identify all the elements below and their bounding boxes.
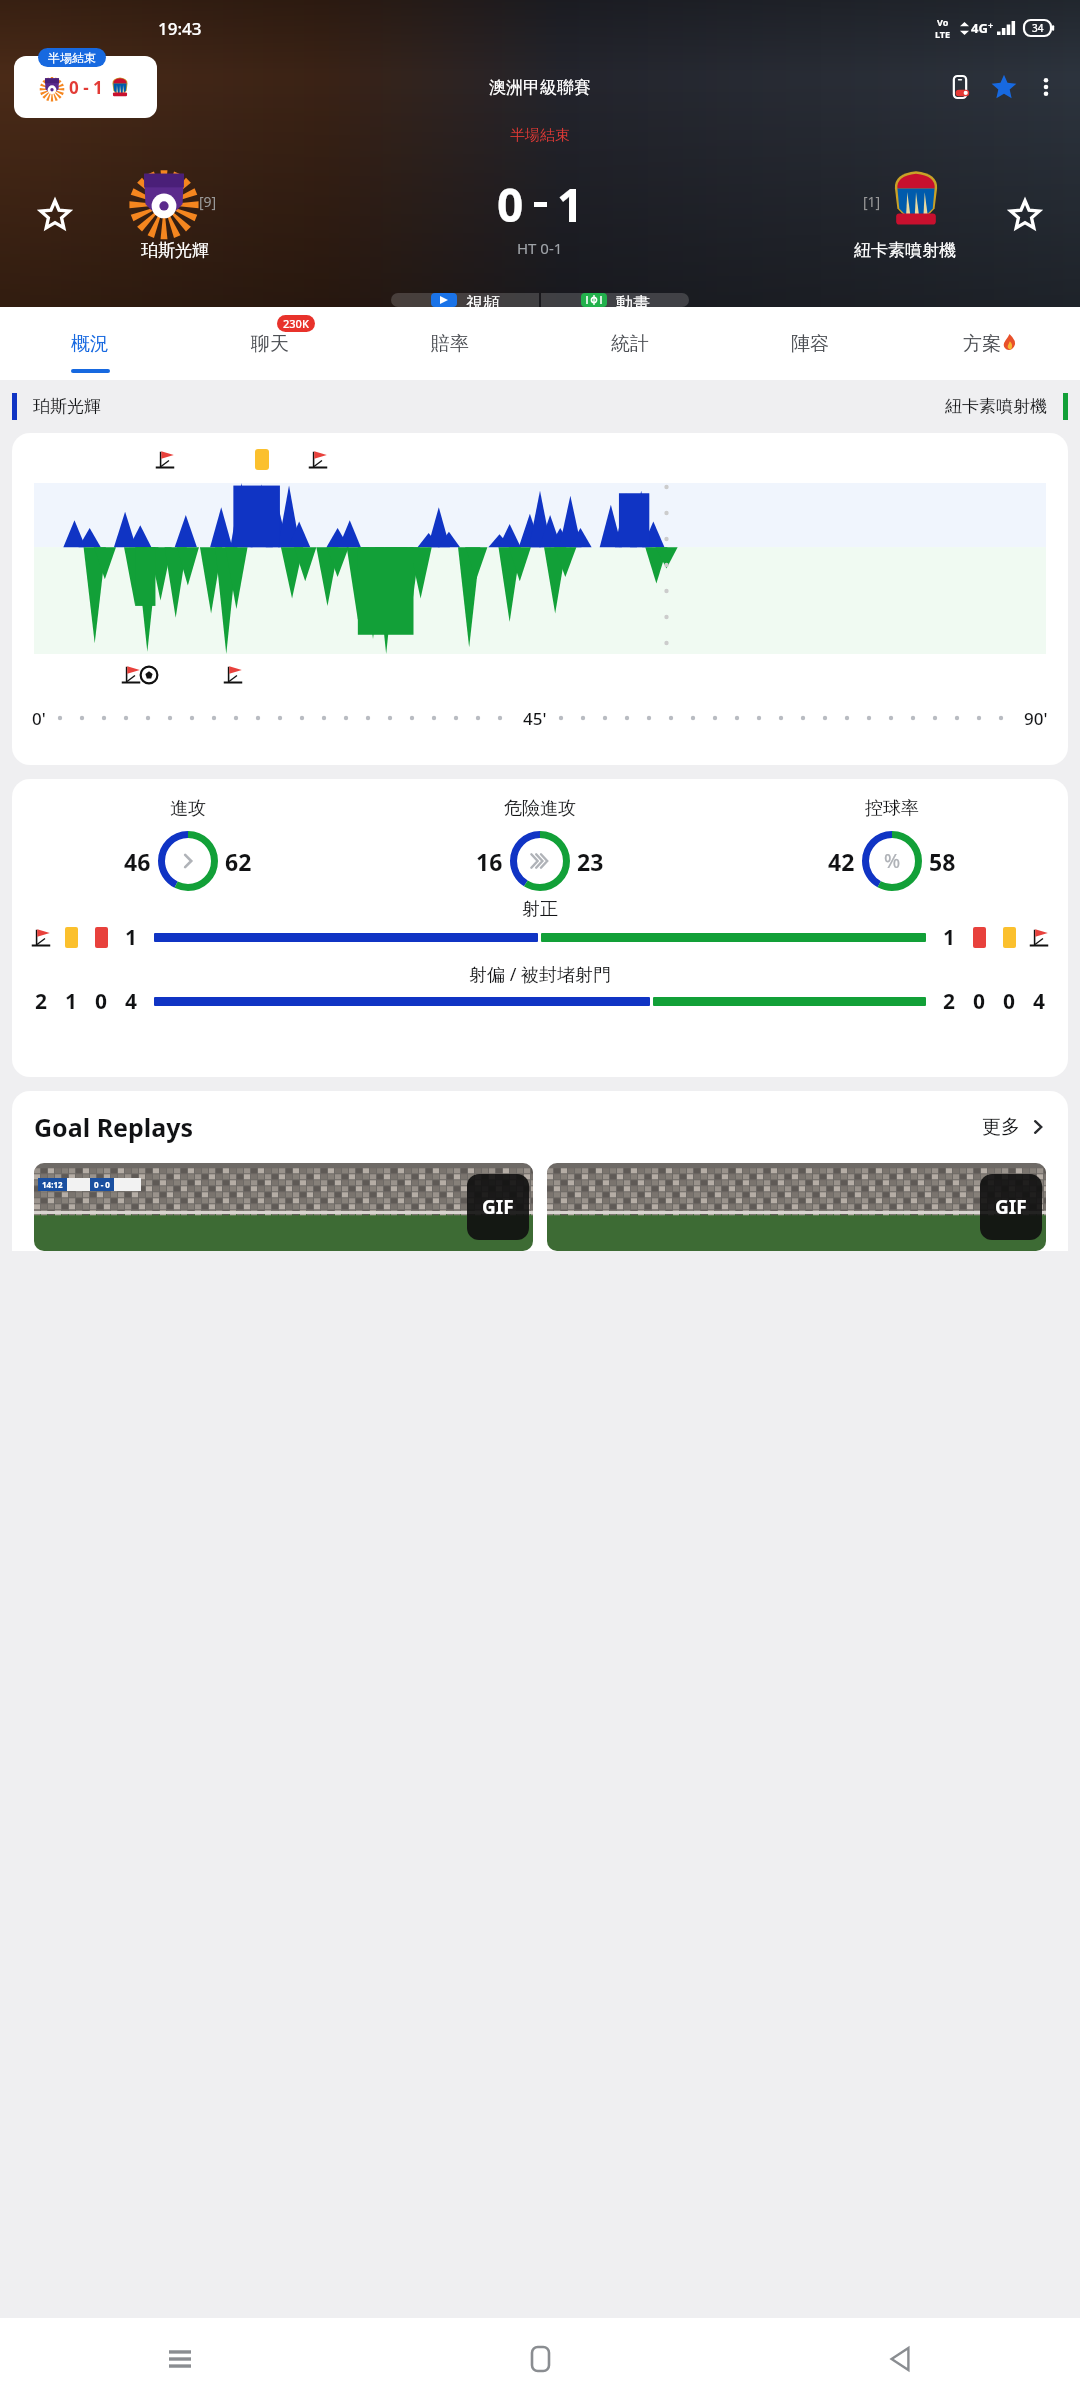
staticText: 230K — [283, 316, 309, 331]
staticText: Vo — [937, 16, 949, 28]
staticText: 統計 — [611, 332, 649, 356]
staticText: 半場結束 — [48, 50, 96, 65]
staticText: 4 — [125, 987, 138, 1016]
staticText: 射偏 / 被封堵射門 — [12, 962, 1068, 987]
staticText: 進攻 — [170, 797, 206, 820]
staticText: 45' — [523, 707, 547, 730]
staticText: 方案 — [963, 332, 1001, 356]
staticText: [1] — [863, 192, 881, 211]
staticText: 射正 — [12, 898, 1068, 921]
staticText: 1 — [65, 987, 78, 1016]
button[interactable]: 賠率 — [360, 307, 540, 380]
staticText: 紐卡素噴射機 — [854, 240, 956, 261]
staticText: 珀斯光輝 — [33, 396, 101, 417]
button[interactable]: More options — [1026, 67, 1066, 107]
staticText: 視頻 — [466, 293, 500, 307]
button[interactable]: Favorite Newcastle Jets — [970, 151, 1080, 279]
staticText: 0 - 1 — [69, 76, 103, 99]
button[interactable]: 視頻 — [391, 293, 539, 307]
button[interactable]: 0 - 1 — [14, 56, 157, 118]
staticText: 62 — [225, 846, 252, 877]
staticText: 0 — [95, 987, 108, 1016]
staticText: 4 — [1033, 987, 1046, 1016]
button[interactable]: Favorite Perth Glory — [0, 151, 110, 279]
staticText: 控球率 — [865, 797, 919, 820]
staticText: 46 — [124, 846, 151, 877]
button[interactable]: 進攻 — [12, 779, 1068, 1077]
staticText: 0 - 0 — [94, 1179, 110, 1190]
button[interactable]: GIF — [547, 1163, 1046, 1251]
button[interactable]: Notifications off — [938, 65, 982, 109]
button[interactable]: 0' — [12, 433, 1068, 765]
button[interactable]: Back — [720, 2318, 1080, 2400]
staticText: 14:12 — [42, 1179, 63, 1190]
staticText: 19:43 — [158, 17, 202, 40]
staticText: 陣容 — [791, 332, 829, 356]
staticText: 澳洲甲級聯賽 — [489, 77, 591, 98]
staticText: 4G — [971, 19, 988, 37]
staticText: 動畫 — [616, 293, 650, 307]
button[interactable]: Recent apps — [0, 2318, 360, 2400]
staticText: 0 — [973, 987, 986, 1016]
button[interactable]: Home — [360, 2318, 720, 2400]
staticText: 58 — [929, 846, 956, 877]
staticText: HT 0-1 — [517, 238, 563, 258]
staticText: Goal Replays — [34, 1110, 194, 1144]
staticText: 2 — [943, 987, 956, 1016]
staticText: [9] — [199, 192, 217, 211]
button[interactable]: 概況 — [0, 307, 180, 380]
button[interactable]: 方案 — [900, 307, 1080, 380]
button[interactable]: 14:12 — [34, 1163, 533, 1251]
button[interactable]: Favorite — [982, 65, 1026, 109]
button[interactable]: 統計 — [540, 307, 720, 380]
staticText: 0 — [497, 173, 524, 236]
staticText: 34 — [1032, 21, 1044, 35]
button[interactable]: 更多 — [982, 1115, 1046, 1139]
staticText: 0' — [32, 707, 46, 730]
staticText: 2 — [35, 987, 48, 1016]
staticText: % — [884, 848, 901, 874]
staticText: 聊天 — [251, 332, 289, 356]
staticText: 1 — [943, 923, 956, 952]
staticText: 0 — [1003, 987, 1016, 1016]
staticText: 賠率 — [431, 332, 469, 356]
staticText: LTE — [935, 28, 951, 40]
staticText: 危險進攻 — [504, 797, 576, 820]
staticText: 概況 — [71, 332, 109, 356]
button[interactable]: 陣容 — [720, 307, 900, 380]
staticText: 更多 — [982, 1115, 1020, 1139]
staticText: 16 — [476, 846, 503, 877]
staticText: 23 — [577, 846, 604, 877]
staticText: 90' — [1024, 707, 1048, 730]
staticText: 1 — [557, 173, 584, 236]
staticText: GIF — [995, 1194, 1027, 1220]
button[interactable]: 聊天 — [180, 307, 360, 380]
staticText: + — [988, 19, 994, 31]
staticText: GIF — [482, 1194, 514, 1220]
staticText: 珀斯光輝 — [141, 240, 209, 261]
staticText: 半場結束 — [0, 126, 1080, 145]
button[interactable]: 動畫 — [541, 293, 689, 307]
staticText: 1 — [125, 923, 138, 952]
staticText: 紐卡素噴射機 — [945, 396, 1047, 417]
staticText: 42 — [828, 846, 855, 877]
